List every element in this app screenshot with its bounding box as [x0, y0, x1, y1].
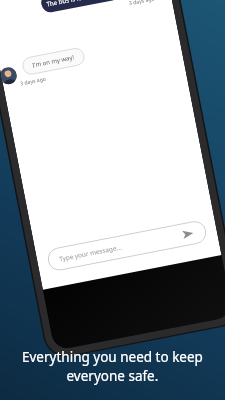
button[interactable]: Chat screen preview — [0, 0, 225, 400]
